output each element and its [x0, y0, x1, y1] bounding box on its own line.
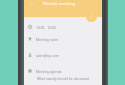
button[interactable]: Back — [24, 0, 102, 17]
staticText: What exactly should be discussed — [37, 76, 89, 80]
staticText: Weekly meeting — [43, 1, 76, 7]
staticText: Meeting agenda — [36, 69, 62, 73]
staticText: Meeting room — [36, 37, 59, 41]
button[interactable]: Meeting room — [24, 35, 102, 42]
button[interactable]: Meeting agenda — [24, 67, 102, 74]
staticText: sales@xyz.com — [36, 53, 60, 57]
button[interactable]: Edit — [86, 11, 97, 22]
button[interactable]: 10:00 - 16:00 — [24, 23, 102, 30]
button[interactable]: sales@xyz.com — [24, 51, 102, 58]
staticText: 10:00 - 16:00 — [36, 25, 56, 29]
button[interactable]: Back — [27, 0, 38, 9]
